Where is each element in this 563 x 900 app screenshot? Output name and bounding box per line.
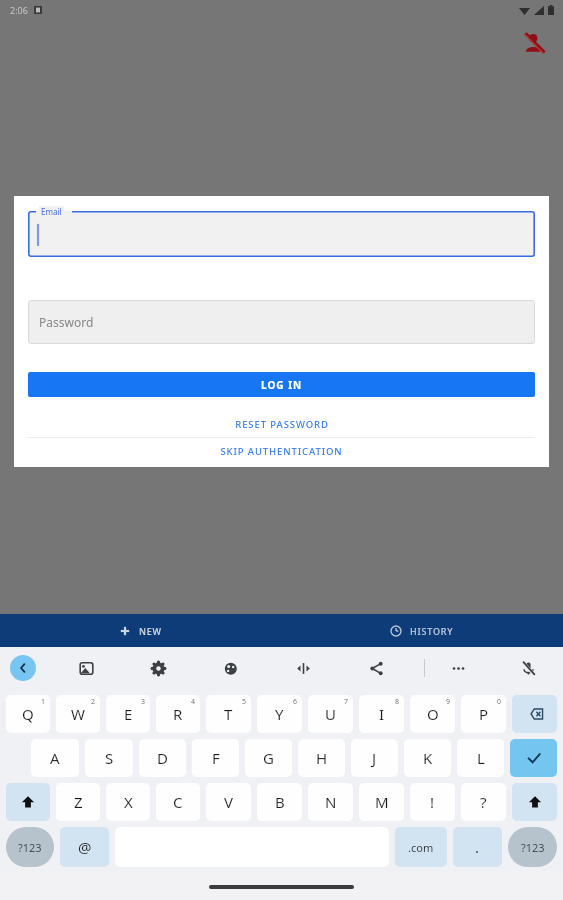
staticText: Z bbox=[74, 792, 83, 812]
button[interactable]: Password bbox=[28, 300, 535, 344]
button[interactable]: HISTORY bbox=[281, 614, 563, 647]
staticText: R bbox=[173, 704, 183, 724]
staticText: I bbox=[379, 704, 385, 724]
staticText: RESET PASSWORD bbox=[235, 418, 329, 431]
button[interactable] bbox=[6, 783, 50, 821]
button[interactable]: SKIP AUTHENTICATION bbox=[14, 438, 549, 464]
staticText: N bbox=[325, 792, 337, 812]
button[interactable]: Y bbox=[257, 695, 302, 733]
staticText: 1 bbox=[41, 697, 46, 707]
staticText: 6 bbox=[293, 697, 298, 707]
staticText: 2 bbox=[91, 697, 96, 707]
staticText: F bbox=[212, 748, 220, 768]
staticText: LOG IN bbox=[261, 378, 303, 392]
button[interactable]: R bbox=[156, 695, 200, 733]
staticText: L bbox=[477, 748, 485, 768]
button[interactable] bbox=[510, 739, 557, 777]
button[interactable]: L bbox=[457, 739, 504, 777]
staticText: O bbox=[427, 704, 439, 724]
button[interactable]: ?123 bbox=[508, 827, 557, 867]
button[interactable]: K bbox=[404, 739, 451, 777]
button[interactable]: Z bbox=[56, 783, 100, 821]
staticText: 9 bbox=[446, 697, 451, 707]
button[interactable]: V bbox=[206, 783, 251, 821]
button[interactable]: NEW bbox=[0, 614, 281, 647]
button[interactable]: ? bbox=[461, 783, 506, 821]
button[interactable]: D bbox=[139, 739, 186, 777]
staticText: ?123 bbox=[18, 840, 42, 855]
staticText: 3 bbox=[141, 697, 146, 707]
button[interactable]: .com bbox=[395, 827, 447, 867]
staticText: 7 bbox=[344, 697, 349, 707]
button[interactable]: B bbox=[257, 783, 302, 821]
staticText: 2:06 bbox=[10, 4, 28, 16]
staticText: 8 bbox=[395, 697, 400, 707]
button[interactable]: . bbox=[453, 827, 502, 867]
staticText: S bbox=[105, 748, 114, 768]
staticText: Y bbox=[275, 704, 284, 724]
button[interactable]: F bbox=[192, 739, 239, 777]
button[interactable]: T bbox=[206, 695, 251, 733]
staticText: M bbox=[375, 792, 389, 812]
button[interactable]: Settings bbox=[142, 652, 174, 684]
button[interactable]: A bbox=[31, 739, 79, 777]
button[interactable]: More options bbox=[442, 652, 474, 684]
staticText: 0 bbox=[497, 697, 502, 707]
staticText: V bbox=[224, 792, 234, 812]
staticText: H bbox=[316, 748, 328, 768]
staticText: K bbox=[423, 748, 433, 768]
button[interactable]: W bbox=[56, 695, 100, 733]
staticText: @ bbox=[78, 837, 92, 857]
button[interactable]: G bbox=[245, 739, 292, 777]
button[interactable]: Microphone off bbox=[512, 652, 544, 684]
button[interactable]: H bbox=[298, 739, 345, 777]
button[interactable]: @ bbox=[60, 827, 109, 867]
button[interactable]: Back bbox=[10, 655, 36, 681]
staticText: 5 bbox=[242, 697, 247, 707]
button[interactable] bbox=[512, 695, 557, 733]
button[interactable]: ! bbox=[410, 783, 455, 821]
staticText: J bbox=[372, 748, 377, 768]
button[interactable]: ?123 bbox=[6, 827, 54, 867]
button[interactable]: M bbox=[359, 783, 404, 821]
button[interactable]: RESET PASSWORD bbox=[14, 411, 549, 437]
button[interactable]: P bbox=[461, 695, 506, 733]
button[interactable]: Q bbox=[6, 695, 50, 733]
staticText: P bbox=[479, 704, 489, 724]
button[interactable]: O bbox=[410, 695, 455, 733]
staticText: ?123 bbox=[521, 840, 545, 855]
staticText: ? bbox=[480, 792, 487, 812]
button[interactable]: Person off bbox=[519, 28, 549, 58]
staticText: X bbox=[124, 792, 133, 812]
button[interactable]: Resize bbox=[287, 652, 319, 684]
staticText: SKIP AUTHENTICATION bbox=[220, 445, 343, 458]
button[interactable]: E bbox=[106, 695, 150, 733]
staticText: . bbox=[475, 837, 480, 857]
button[interactable]: J bbox=[351, 739, 398, 777]
staticText: W bbox=[71, 704, 85, 724]
button[interactable]: U bbox=[308, 695, 353, 733]
button[interactable]: C bbox=[156, 783, 200, 821]
staticText: U bbox=[325, 704, 336, 724]
button[interactable]: N bbox=[308, 783, 353, 821]
button[interactable]: I bbox=[359, 695, 404, 733]
staticText: A bbox=[50, 748, 60, 768]
button[interactable]: S bbox=[85, 739, 133, 777]
staticText: B bbox=[275, 792, 285, 812]
button[interactable] bbox=[512, 783, 557, 821]
staticText: Q bbox=[22, 704, 34, 724]
staticText: 4 bbox=[191, 697, 196, 707]
button[interactable]: X bbox=[106, 783, 150, 821]
staticText: ! bbox=[430, 792, 435, 812]
staticText: .com bbox=[408, 840, 434, 855]
button[interactable]: Share bbox=[360, 652, 392, 684]
staticText: E bbox=[124, 704, 133, 724]
staticText: HISTORY bbox=[410, 625, 454, 637]
button[interactable]: LOG IN bbox=[28, 372, 535, 397]
staticText: NEW bbox=[139, 625, 162, 637]
staticText: D bbox=[157, 748, 168, 768]
button[interactable]: Sticker bbox=[70, 652, 102, 684]
staticText: C bbox=[173, 792, 183, 812]
button[interactable]: Theme bbox=[214, 652, 246, 684]
